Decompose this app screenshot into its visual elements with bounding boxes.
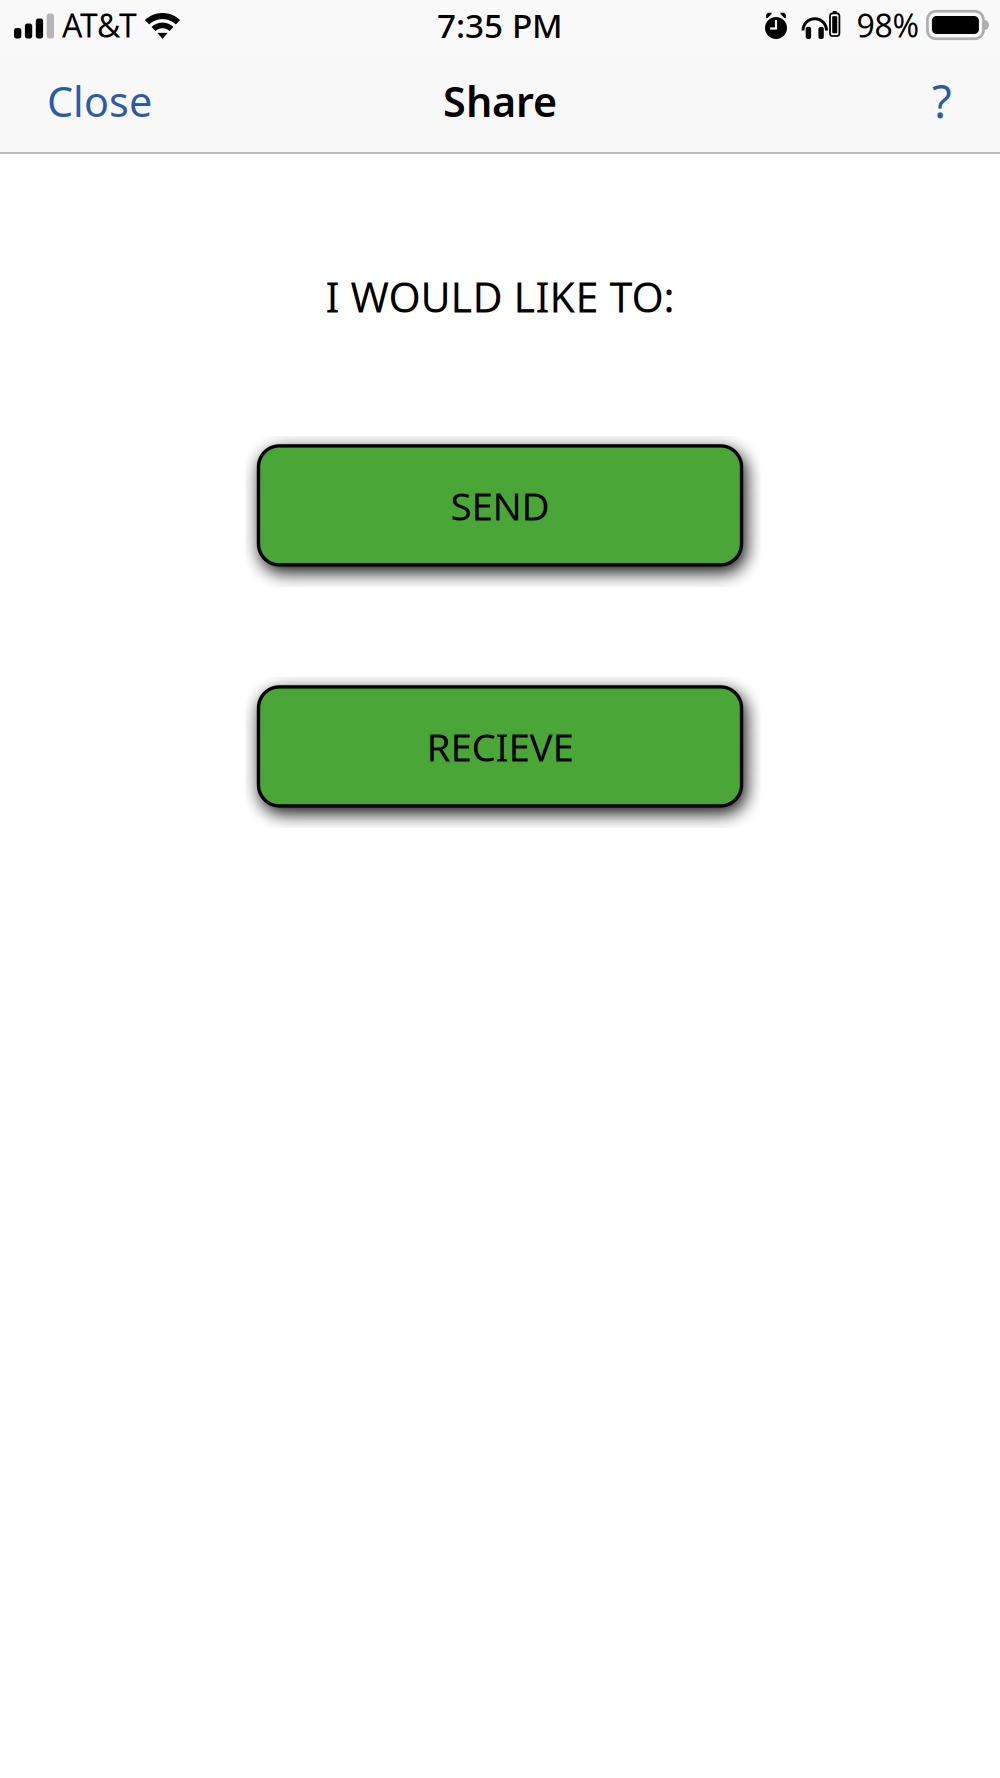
staticText: I WOULD LIKE TO:: [325, 269, 674, 324]
staticText: Share: [443, 74, 557, 128]
button[interactable]: Help: [915, 55, 969, 155]
staticText: 98%: [856, 4, 919, 46]
button[interactable]: SEND: [258, 446, 741, 565]
staticText: AT&T: [62, 4, 137, 46]
staticText: RECIEVE: [426, 721, 573, 772]
staticText: SEND: [450, 480, 549, 531]
staticText: Close: [47, 74, 152, 128]
staticText: 7:35 PM: [437, 3, 563, 47]
staticText: ?: [932, 71, 952, 131]
button[interactable]: Close: [31, 58, 168, 152]
button[interactable]: RECIEVE: [258, 687, 741, 806]
